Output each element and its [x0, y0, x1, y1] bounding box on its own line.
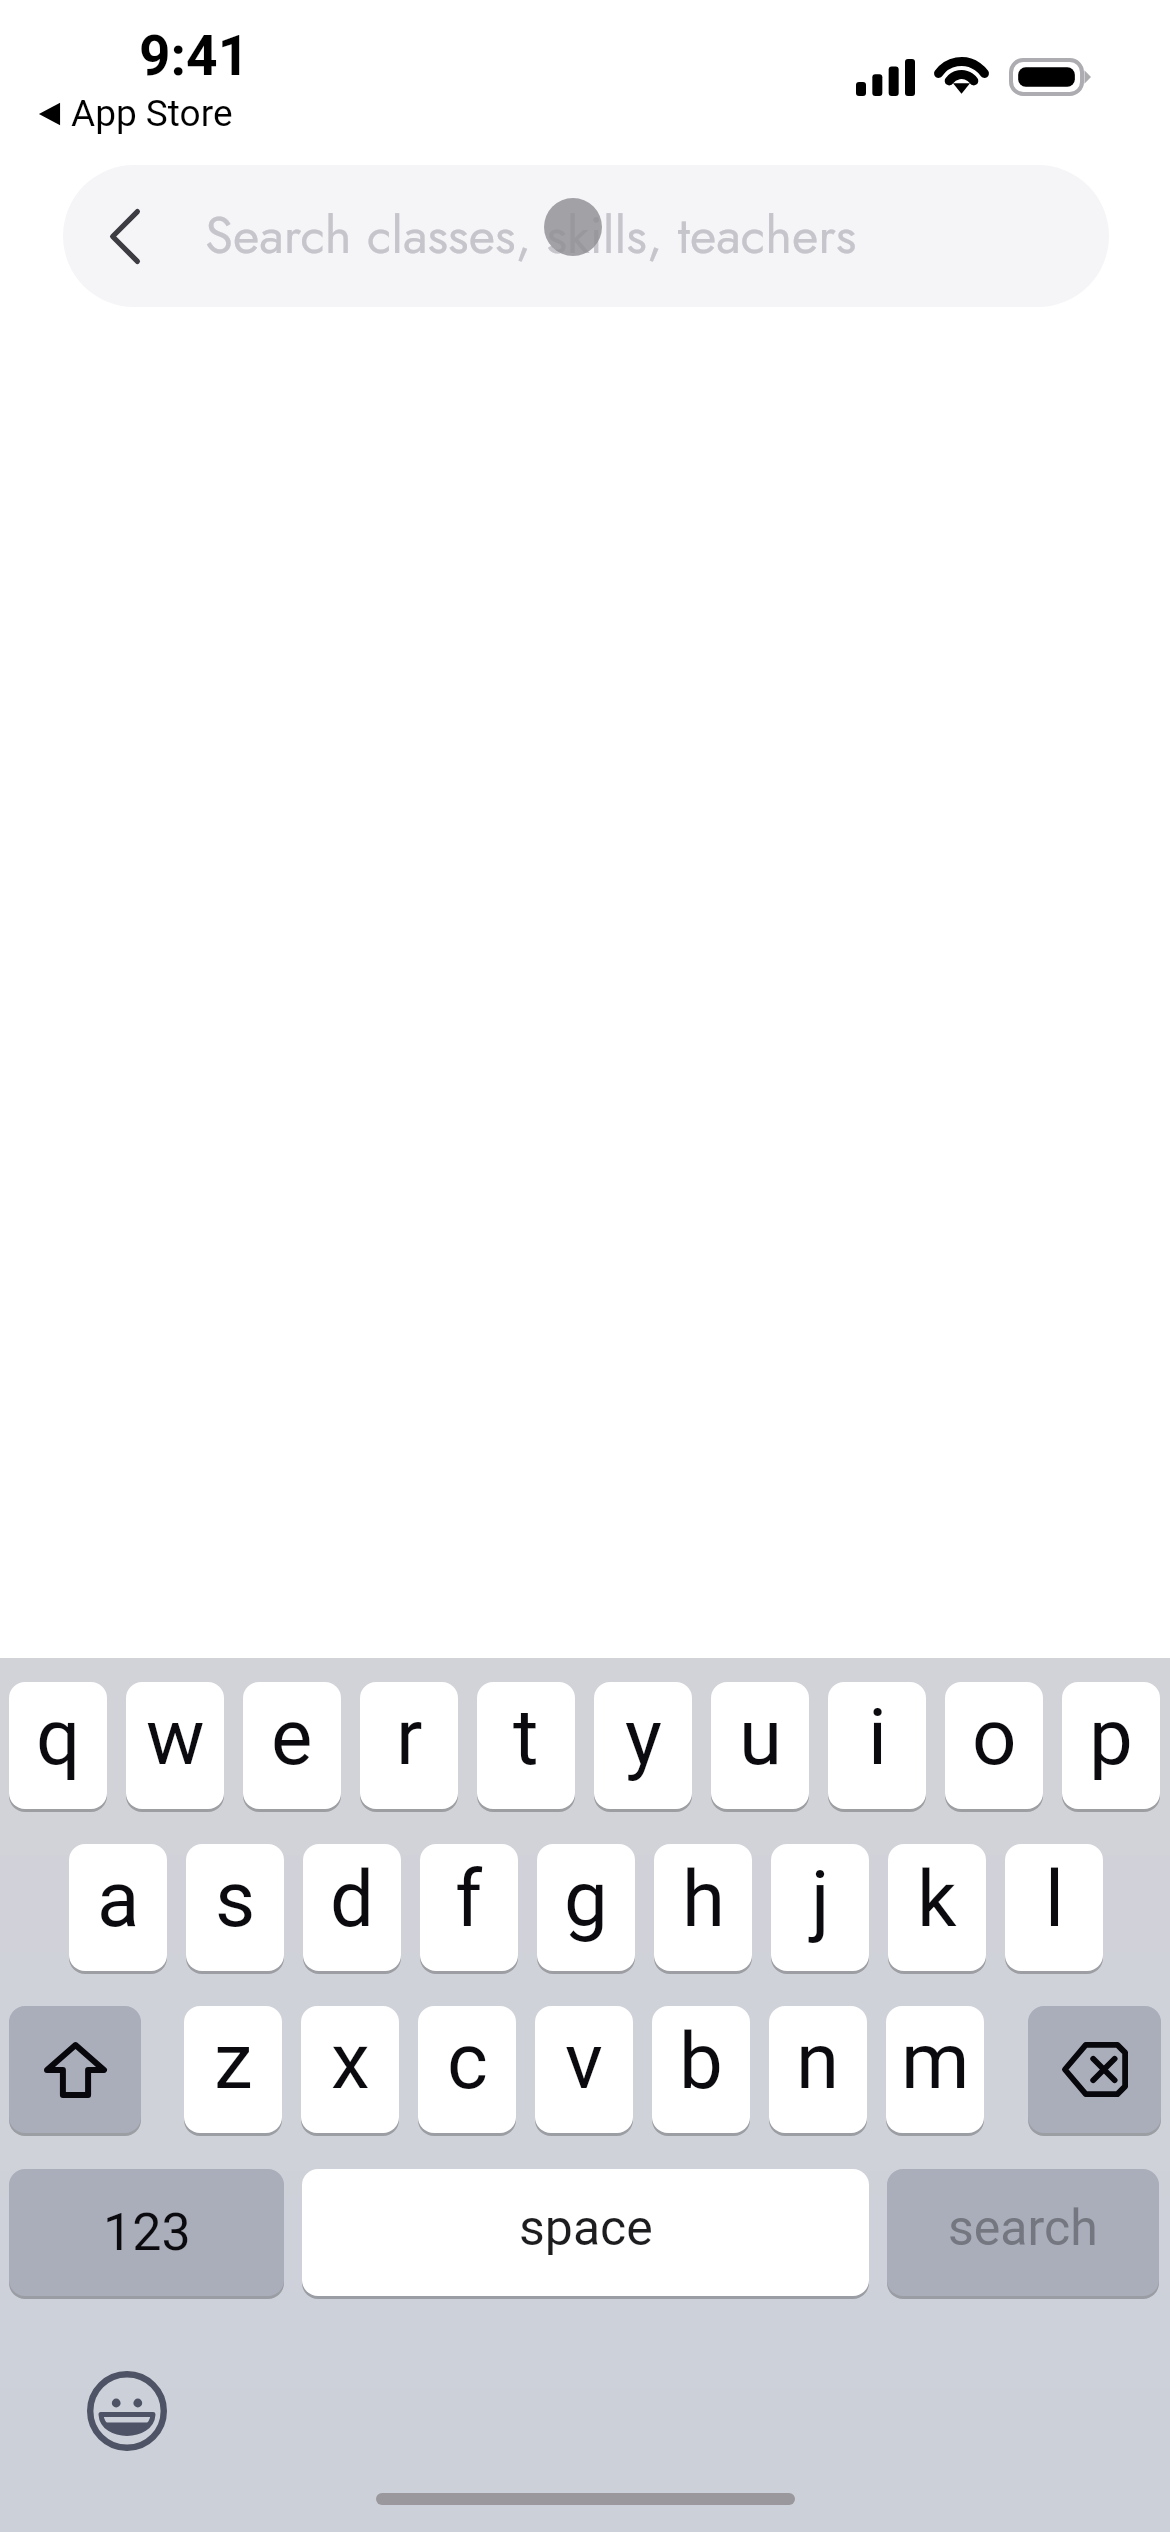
button[interactable]: s — [186, 1844, 284, 1971]
staticText: l — [1045, 1854, 1064, 1945]
button[interactable]: h — [654, 1844, 752, 1971]
button[interactable]: l — [1005, 1844, 1103, 1971]
button[interactable]: u — [711, 1682, 809, 1809]
staticText: 123 — [103, 2202, 191, 2263]
staticText: space — [519, 2199, 653, 2258]
staticText: search — [948, 2199, 1098, 2258]
button[interactable]: v — [535, 2006, 633, 2133]
button[interactable]: Back — [63, 165, 1109, 307]
button[interactable]: y — [594, 1682, 692, 1809]
button[interactable]: p — [1062, 1682, 1160, 1809]
staticText: y — [625, 1692, 662, 1783]
button[interactable]: r — [360, 1682, 458, 1809]
staticText: n — [796, 2016, 840, 2107]
button[interactable]: space — [302, 2169, 869, 2296]
button[interactable]: x — [301, 2006, 399, 2133]
staticText: w — [146, 1692, 205, 1783]
button[interactable]: o — [945, 1682, 1043, 1809]
staticText: q — [36, 1692, 81, 1783]
staticText: t — [513, 1692, 539, 1783]
staticText: v — [565, 2016, 603, 2107]
staticText: f — [455, 1854, 483, 1945]
staticText: h — [682, 1854, 725, 1945]
button[interactable]: k — [888, 1844, 986, 1971]
staticText: b — [679, 2016, 723, 2107]
button[interactable]: c — [418, 2006, 516, 2133]
button[interactable]: b — [652, 2006, 750, 2133]
staticText: m — [901, 2016, 970, 2107]
staticText: r — [396, 1692, 423, 1783]
staticText: e — [271, 1692, 313, 1783]
staticText: g — [564, 1854, 608, 1945]
button[interactable]: a — [69, 1844, 167, 1971]
button[interactable]: d — [303, 1844, 401, 1971]
button[interactable]: j — [771, 1844, 869, 1971]
staticText: j — [811, 1854, 830, 1945]
staticText: a — [97, 1854, 140, 1945]
button[interactable]: w — [126, 1682, 224, 1809]
staticText: z — [214, 2016, 253, 2107]
button[interactable]: g — [537, 1844, 635, 1971]
button[interactable]: Emoji keyboard — [87, 2371, 167, 2451]
button[interactable]: z — [184, 2006, 282, 2133]
staticText: 9:41 — [139, 24, 250, 88]
staticText: u — [739, 1692, 782, 1783]
button[interactable]: f — [420, 1844, 518, 1971]
button[interactable]: m — [886, 2006, 984, 2133]
staticText: d — [330, 1854, 374, 1945]
button[interactable]: n — [769, 2006, 867, 2133]
staticText: p — [1089, 1692, 1133, 1783]
staticText: k — [917, 1854, 957, 1945]
staticText: s — [215, 1854, 256, 1945]
button[interactable]: Back — [85, 196, 165, 276]
button[interactable]: Shift — [9, 2006, 141, 2133]
button[interactable]: i — [828, 1682, 926, 1809]
staticText: x — [331, 2016, 370, 2107]
staticText: c — [447, 2016, 488, 2107]
staticText: App Store — [71, 92, 233, 135]
button[interactable]: search — [887, 2169, 1159, 2296]
button[interactable]: 123 — [9, 2169, 284, 2296]
button[interactable]: q — [9, 1682, 107, 1809]
button[interactable]: e — [243, 1682, 341, 1809]
button[interactable]: Delete — [1028, 2006, 1161, 2133]
button[interactable]: t — [477, 1682, 575, 1809]
button[interactable]: App Store — [36, 92, 235, 135]
staticText: Search classes, skills, teachers — [205, 198, 857, 272]
staticText: i — [868, 1692, 887, 1783]
staticText: o — [972, 1692, 1017, 1783]
